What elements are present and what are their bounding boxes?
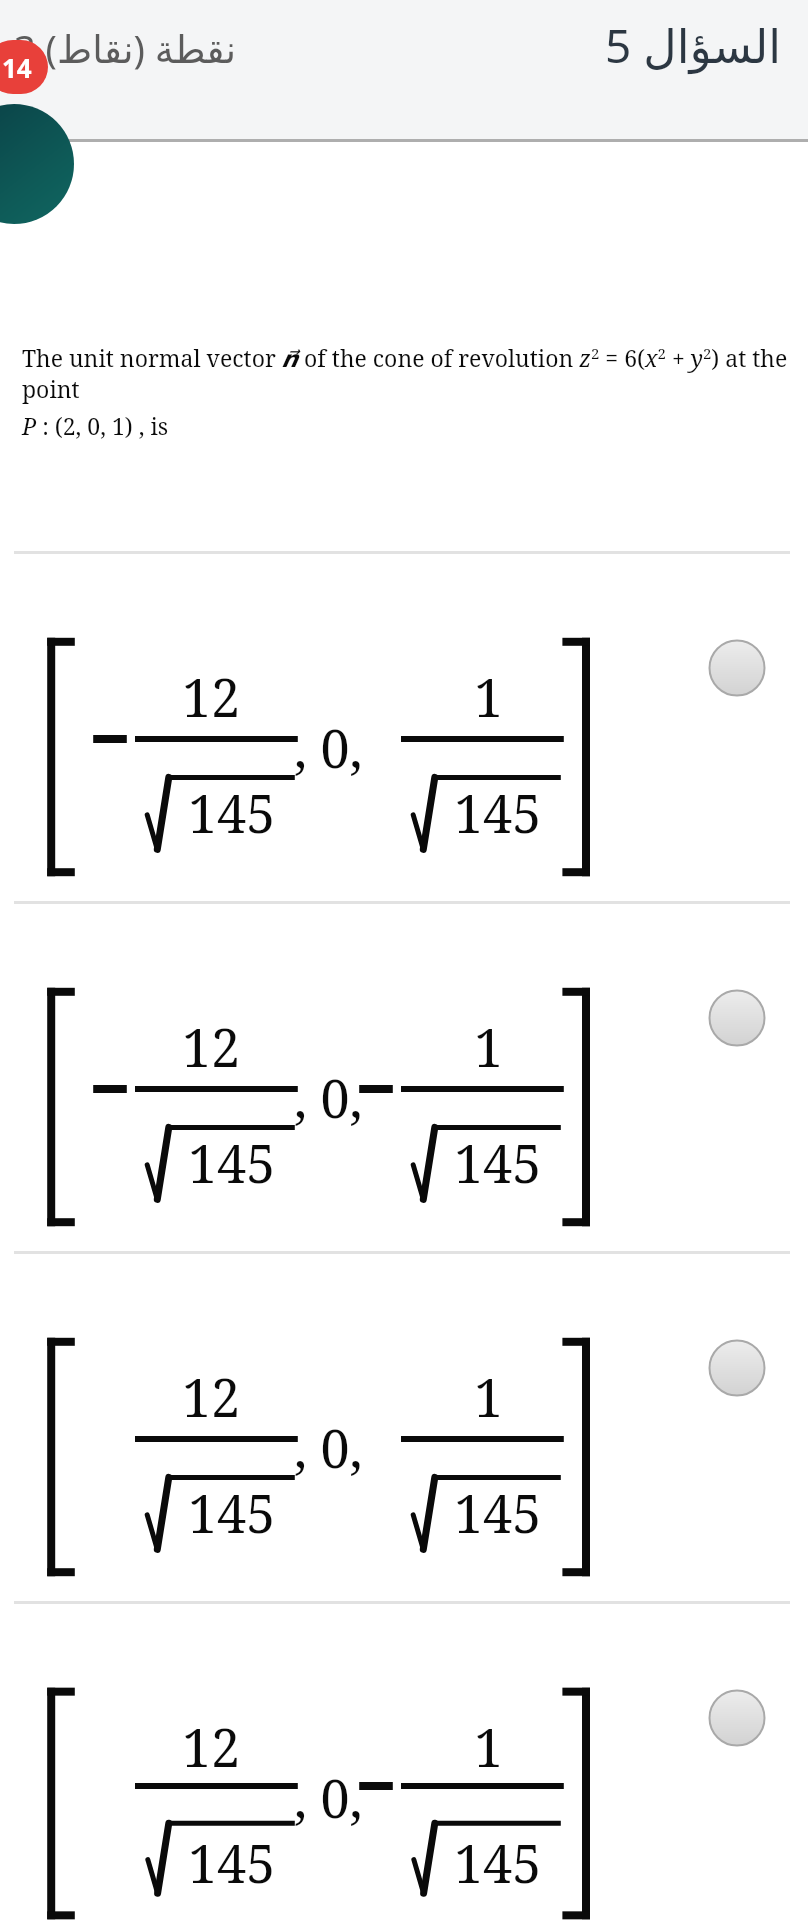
staticText: 1 (474, 1361, 504, 1432)
staticText: 12 (182, 1711, 241, 1782)
staticText: 12 (182, 1361, 241, 1432)
staticText: 14 (2, 50, 32, 85)
staticText: 3 نقطة (نقاط) (14, 22, 237, 74)
staticText: 145 (188, 1127, 276, 1198)
staticText: , 0, (294, 712, 363, 783)
staticText: 145 (454, 1127, 542, 1198)
staticText: , 0, (294, 1762, 363, 1833)
button[interactable]: Select answer (708, 1339, 766, 1397)
staticText: 12 (182, 1011, 241, 1082)
staticText: 1 (474, 661, 504, 732)
staticText: , 0, (294, 1062, 363, 1133)
staticText: 145 (188, 1477, 276, 1548)
staticText: 145 (454, 1477, 542, 1548)
staticText: 12 (182, 661, 241, 732)
button[interactable]: 12 (0, 1601, 808, 1920)
button[interactable]: Profile (0, 104, 74, 224)
button[interactable]: 14 notifications (0, 40, 48, 94)
button[interactable]: 12 (0, 901, 808, 1251)
button[interactable]: Select answer (708, 639, 766, 697)
staticText: 1 (474, 1011, 504, 1082)
staticText: P : (2, 0, 1) , is (22, 410, 169, 441)
staticText: 145 (454, 777, 542, 848)
staticText: 145 (188, 1827, 276, 1898)
button[interactable]: Select answer (708, 1689, 766, 1747)
button[interactable]: Select answer (708, 989, 766, 1047)
staticText: 1 (474, 1711, 504, 1782)
staticText: The unit normal vector n⃗ of the cone of… (22, 342, 788, 404)
staticText: السؤال 5 (605, 14, 782, 77)
staticText: 145 (454, 1827, 542, 1898)
button[interactable]: 12 (0, 551, 808, 901)
staticText: 145 (188, 777, 276, 848)
staticText: , 0, (294, 1412, 363, 1483)
button[interactable]: 12 (0, 1251, 808, 1601)
